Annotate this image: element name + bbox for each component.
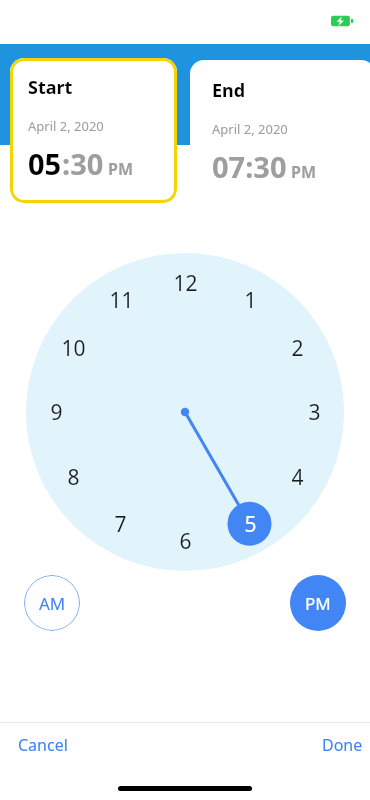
- staticText: 6: [179, 527, 192, 556]
- staticText: AM: [39, 592, 66, 615]
- staticText: 4: [291, 463, 304, 492]
- staticText: 2: [291, 334, 304, 363]
- staticText: 10: [61, 334, 86, 363]
- other: Battery charging: [331, 14, 353, 28]
- staticText: End: [212, 78, 246, 103]
- staticText: April 2, 2020: [28, 117, 104, 135]
- staticText: 1: [244, 286, 257, 315]
- staticText: 5: [244, 510, 257, 539]
- staticText: 9: [50, 398, 63, 427]
- button[interactable]: PM: [290, 575, 346, 631]
- staticText: Cancel: [18, 734, 68, 756]
- button[interactable]: Start: [10, 58, 177, 203]
- staticText: :30: [62, 144, 104, 183]
- staticText: Start: [28, 75, 73, 100]
- staticText: April 2, 2020: [212, 120, 288, 138]
- staticText: Done: [322, 734, 363, 756]
- staticText: PM: [305, 592, 331, 615]
- staticText: 05: [28, 144, 62, 183]
- staticText: 11: [109, 286, 134, 315]
- staticText: 8: [67, 463, 80, 492]
- staticText: 3: [308, 398, 321, 427]
- button[interactable]: Done: [310, 730, 370, 760]
- staticText: PM: [108, 158, 134, 180]
- button[interactable]: AM: [24, 575, 80, 631]
- staticText: 7: [114, 510, 127, 539]
- staticText: 07:30: [212, 147, 287, 186]
- staticText: 12: [173, 269, 198, 298]
- button[interactable]: Cancel: [6, 730, 80, 760]
- button[interactable]: End: [190, 60, 370, 201]
- staticText: PM: [291, 161, 317, 183]
